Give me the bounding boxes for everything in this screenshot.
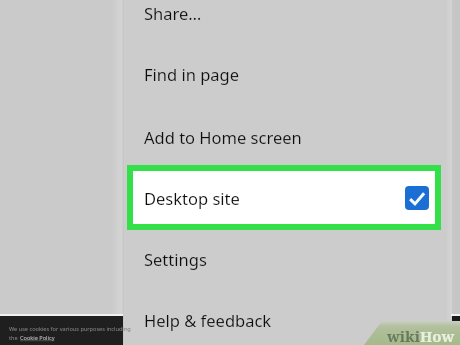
other: Desktop site checkbox <box>405 186 429 210</box>
button[interactable]: Add to Home screen <box>124 106 450 168</box>
staticText: How <box>420 326 455 345</box>
staticText: Desktop site <box>144 187 240 209</box>
button[interactable]: Help & feedback <box>124 289 450 345</box>
staticText: wiki <box>387 326 420 345</box>
button[interactable]: We use cookies for various purposes incl… <box>0 316 123 345</box>
staticText: Help & feedback <box>144 309 272 331</box>
button[interactable]: Share… <box>124 0 450 44</box>
staticText: Cookie Policy <box>20 334 55 342</box>
staticText: Add to Home screen <box>144 126 302 148</box>
staticText: Settings <box>144 248 207 270</box>
staticText: the <box>9 334 20 342</box>
button[interactable]: Settings <box>124 228 450 290</box>
staticText: Find in page <box>144 63 240 85</box>
button[interactable]: Desktop site <box>133 171 435 224</box>
staticText: Share… <box>144 2 202 24</box>
staticText: We use cookies for various purposes incl… <box>9 325 132 333</box>
button[interactable]: Find in page <box>124 43 450 105</box>
